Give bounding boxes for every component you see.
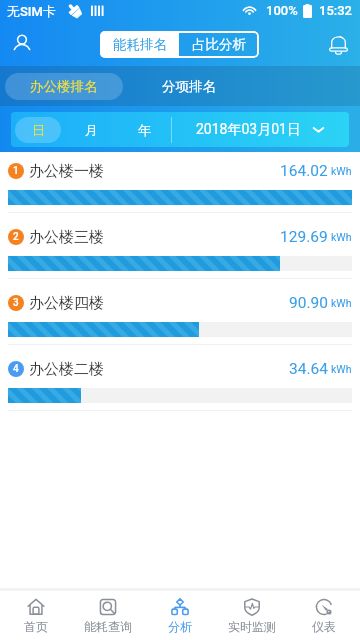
staticText: 月 (85, 122, 98, 138)
staticText: 年 (138, 122, 151, 138)
staticText: 15:32 (319, 3, 352, 18)
staticText: 无SIM卡 (7, 3, 56, 19)
staticText: kWh (331, 297, 352, 309)
staticText: 办公楼排名 (30, 78, 98, 95)
staticText: 办公楼三楼 (29, 228, 104, 247)
staticText: 129.69 (280, 228, 328, 246)
button[interactable]: 分项排名 (123, 66, 255, 106)
button[interactable]: 能耗查询 (72, 591, 144, 640)
staticText: 100% (266, 3, 298, 18)
button[interactable]: 实时监测 (216, 591, 288, 640)
button[interactable]: 占比分析 (179, 31, 259, 58)
staticText: 分项排名 (162, 78, 216, 95)
staticText: 办公楼二楼 (29, 360, 104, 379)
staticText: 占比分析 (192, 36, 246, 53)
button[interactable]: 月 (64, 112, 118, 147)
staticText: 实时监测 (228, 619, 276, 634)
staticText: 仪表 (312, 619, 336, 634)
button[interactable]: 2 (0, 218, 360, 284)
staticText: 4 (13, 363, 19, 375)
staticText: 能耗查询 (84, 619, 132, 634)
staticText: 90.90 (289, 294, 328, 312)
staticText: 2018年03月01日 (196, 121, 301, 139)
button[interactable]: 分析 (144, 591, 216, 640)
button[interactable]: 年 (118, 112, 171, 147)
staticText: kWh (331, 165, 352, 177)
button[interactable]: 首页 (0, 591, 72, 640)
button[interactable]: 办公楼排名 (5, 73, 123, 100)
button[interactable]: 4 (0, 350, 360, 416)
staticText: 能耗排名 (113, 36, 167, 53)
button[interactable]: 日 (11, 112, 64, 147)
staticText: 2 (13, 231, 19, 243)
button[interactable]: 2018年03月01日 (172, 112, 349, 147)
staticText: 首页 (24, 619, 48, 634)
staticText: 1 (13, 165, 19, 177)
staticText: 分析 (168, 619, 192, 634)
staticText: kWh (331, 363, 352, 375)
button[interactable]: Profile (0, 22, 44, 66)
staticText: kWh (331, 231, 352, 243)
button[interactable]: 仪表 (288, 591, 360, 640)
button[interactable]: 1 (0, 152, 360, 218)
button[interactable]: 3 (0, 284, 360, 350)
staticText: 办公楼四楼 (29, 294, 104, 313)
staticText: 34.64 (289, 360, 328, 378)
button[interactable]: Notifications (316, 22, 360, 66)
staticText: 164.02 (280, 162, 328, 180)
staticText: 日 (32, 122, 45, 138)
button[interactable]: 能耗排名 (100, 31, 179, 58)
staticText: 办公楼一楼 (29, 162, 104, 181)
staticText: 3 (13, 297, 19, 309)
